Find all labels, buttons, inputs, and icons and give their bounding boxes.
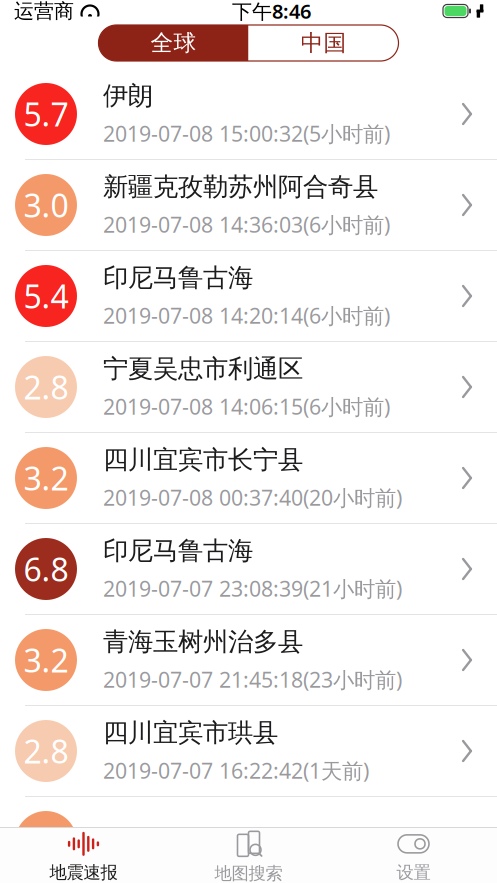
staticText: 3.0 xyxy=(23,184,68,226)
staticText: 设置 xyxy=(396,862,430,883)
staticText: 印尼马鲁古海 xyxy=(103,535,253,566)
staticText: 2019-07-07 16:22:42(1天前) xyxy=(103,756,369,785)
staticText: 宁夏吴忠市利通区 xyxy=(103,353,303,384)
button[interactable]: 3.0 xyxy=(0,160,497,251)
staticText: 青海玉树州治多县 xyxy=(103,626,303,657)
button[interactable]: 设置 xyxy=(331,828,496,883)
staticText: 四川宜宾市长宁县 xyxy=(103,444,303,475)
staticText: 2.9 xyxy=(23,821,68,863)
staticText: 下午8:46 xyxy=(232,0,311,24)
staticText: 3.2 xyxy=(23,457,68,499)
staticText: 四川宜宾市珙县 xyxy=(103,717,278,748)
button[interactable]: 5.4 xyxy=(0,251,497,342)
staticText: 2019-07-08 00:37:40(20小时前) xyxy=(103,483,402,512)
staticText: 新疆克孜勒苏州阿合奇县 xyxy=(103,171,378,202)
staticText: 5.4 xyxy=(23,275,68,317)
staticText: 2019-07-07 23:08:39(21小时前) xyxy=(103,574,402,603)
staticText: 2019-07-08 14:20:14(6小时前) xyxy=(103,301,390,330)
button[interactable]: 2.8 xyxy=(0,706,497,797)
staticText: 6.8 xyxy=(23,548,68,590)
staticText: 地图搜索 xyxy=(214,863,282,883)
staticText: 2019-07-07 21:45:18(23小时前) xyxy=(103,665,402,694)
button[interactable]: 5.7 xyxy=(0,69,497,160)
button[interactable]: 地震速报 xyxy=(1,828,166,883)
staticText: 伊朗 xyxy=(103,80,153,111)
button[interactable]: 全球 xyxy=(98,25,248,61)
staticText: 全球 xyxy=(150,29,196,57)
button[interactable]: 2.8 xyxy=(0,342,497,433)
button[interactable]: 6.8 xyxy=(0,524,497,615)
staticText: 2019-07-08 14:06:15(6小时前) xyxy=(103,392,390,421)
staticText: 印尼马鲁古海 xyxy=(103,262,253,293)
staticText: 2.8 xyxy=(23,730,68,772)
button[interactable]: 中国 xyxy=(248,25,398,61)
staticText: 3.2 xyxy=(23,639,68,681)
staticText: 2019-07-08 15:00:32(5小时前) xyxy=(103,119,390,148)
staticText: 2.8 xyxy=(23,366,68,408)
staticText: 5.7 xyxy=(23,93,68,135)
staticText: 地震速报 xyxy=(49,862,117,883)
staticText: 运营商 xyxy=(14,0,74,23)
button[interactable]: 3.2 xyxy=(0,615,497,706)
button[interactable]: 3.2 xyxy=(0,433,497,524)
button[interactable]: 地图搜索 xyxy=(166,828,331,883)
staticText: 中国 xyxy=(300,29,346,57)
staticText: 2019-07-08 14:36:03(6小时前) xyxy=(103,210,390,239)
